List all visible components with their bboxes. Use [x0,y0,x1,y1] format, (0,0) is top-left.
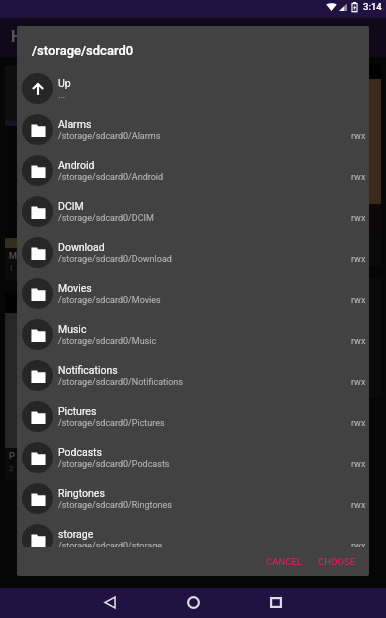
staticText: Music [58,323,87,335]
staticText: Notifications [58,364,118,376]
button[interactable]: Alarms [17,109,369,150]
staticText: /storage/sdcard0/Alarms [58,131,161,142]
staticText: Up [58,77,71,89]
button[interactable]: storage [17,519,369,547]
button[interactable]: Pictures [17,396,369,437]
staticText: ... [58,90,66,101]
staticText: 1 [9,264,14,273]
staticText: Pictures [58,405,97,417]
staticText: rwx [351,295,366,306]
button[interactable]: Download [17,232,369,273]
staticText: /storage/sdcard0/Pictures [58,418,165,429]
staticText: M [9,251,17,262]
staticText: rwx [351,418,366,429]
staticText: /storage/sdcard0/Podcasts [58,459,170,470]
button[interactable]: Notifications [17,355,369,396]
staticText: 2 [9,464,14,473]
staticText: rwx [351,377,366,388]
staticText: CHOOSE [318,556,356,567]
staticText: /storage/sdcard0/Download [58,254,172,265]
button[interactable]: Music [17,314,369,355]
staticText: DCIM [58,200,84,212]
staticText: /storage/sdcard0/storage [58,541,163,547]
staticText: /storage/sdcard0 [32,43,134,58]
button[interactable]: Home [172,587,214,617]
button[interactable]: CANCEL [258,551,310,572]
staticText: /storage/sdcard0/DCIM [58,213,154,224]
button[interactable]: Recents [255,587,297,617]
staticText: /storage/sdcard0/Movies [58,295,161,306]
staticText: /storage/sdcard0/Music [58,336,157,347]
staticText: /storage/sdcard0/Ringtones [58,500,172,511]
button[interactable]: Ringtones [17,478,369,519]
staticText: 3:14 [363,1,382,12]
staticText: rwx [351,500,366,511]
staticText: H [11,27,23,46]
staticText: /storage/sdcard0/Android [58,172,164,183]
staticText: rwx [351,172,366,183]
staticText: rwx [351,541,366,547]
button[interactable]: Podcasts [17,437,369,478]
staticText: storage [58,528,94,540]
button[interactable]: CHOOSE [310,551,364,572]
button[interactable]: Back [89,587,131,617]
staticText: CANCEL [266,556,302,567]
staticText: rwx [351,459,366,470]
staticText: rwx [351,254,366,265]
staticText: Ringtones [58,487,105,499]
staticText: rwx [351,131,366,142]
staticText: Android [58,159,95,171]
staticText: /storage/sdcard0/Notifications [58,377,183,388]
staticText: Download [58,241,105,253]
button[interactable]: Movies [17,273,369,314]
staticText: P [9,451,15,462]
staticText: Podcasts [58,446,102,458]
staticText: Movies [58,282,92,294]
button[interactable]: DCIM [17,191,369,232]
button[interactable]: Android [17,150,369,191]
button[interactable]: Up [17,68,369,109]
staticText: rwx [351,213,366,224]
staticText: Alarms [58,118,92,130]
staticText: rwx [351,336,366,347]
